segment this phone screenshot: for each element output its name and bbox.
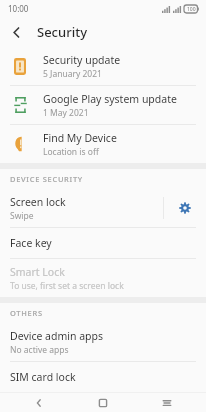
- staticText: 5 January 2021: [43, 68, 102, 80]
- staticText: Security: [37, 23, 87, 41]
- staticText: Security update: [43, 53, 121, 67]
- button[interactable]: Face key: [0, 228, 206, 258]
- staticText: No active apps: [10, 344, 69, 356]
- button[interactable]: Home: [78, 393, 128, 412]
- staticText: Face key: [10, 236, 52, 250]
- button[interactable]: Recent apps: [142, 393, 192, 412]
- button[interactable]: Find My Device: [0, 125, 206, 163]
- button[interactable]: Screen lock settings: [164, 189, 206, 227]
- staticText: Swipe: [10, 210, 34, 222]
- staticText: Device admin apps: [10, 329, 104, 343]
- button[interactable]: Screen lock: [0, 189, 163, 227]
- staticText: 10:00: [8, 3, 29, 14]
- staticText: SIM card lock: [10, 370, 76, 384]
- button[interactable]: Smart Lock: [0, 259, 206, 297]
- button[interactable]: Back: [14, 393, 64, 412]
- staticText: OTHERS: [10, 308, 43, 318]
- staticText: Find My Device: [43, 131, 117, 145]
- button[interactable]: Google Play system update: [0, 86, 206, 124]
- staticText: DEVICE SECURITY: [10, 174, 83, 184]
- staticText: Smart Lock: [10, 265, 65, 279]
- button[interactable]: Device admin apps: [0, 323, 206, 361]
- staticText: 1 May 2021: [43, 107, 89, 119]
- staticText: 100: [187, 6, 196, 13]
- staticText: Location is off: [43, 146, 99, 158]
- staticText: To use, first set a screen lock: [10, 280, 124, 292]
- button[interactable]: SIM card lock: [0, 362, 206, 392]
- button[interactable]: Security update: [0, 47, 206, 85]
- staticText: Google Play system update: [43, 92, 177, 106]
- staticText: Screen lock: [10, 195, 66, 209]
- button[interactable]: Back: [3, 19, 29, 45]
